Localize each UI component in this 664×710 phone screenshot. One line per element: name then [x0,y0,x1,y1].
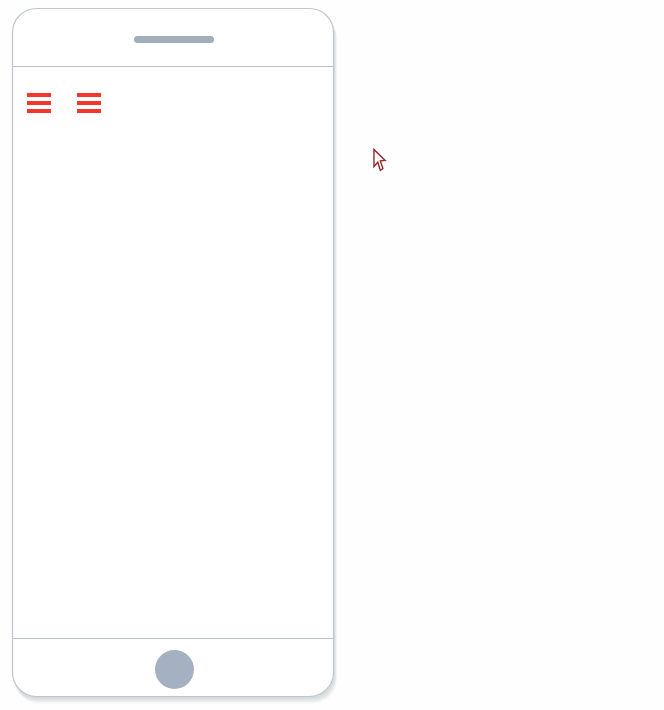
button[interactable]: Home [155,650,194,689]
button[interactable]: Menu [23,89,55,117]
button[interactable]: Navigation menu [73,89,105,117]
